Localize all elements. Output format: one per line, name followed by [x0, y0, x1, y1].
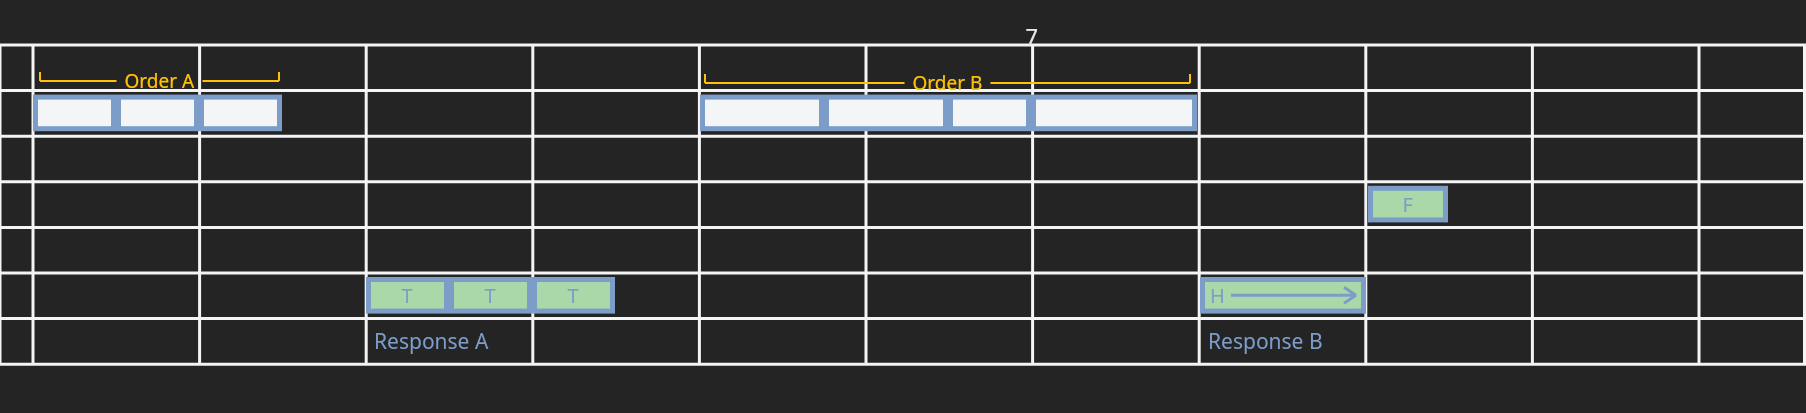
button[interactable]: Timing diagram: [0, 0, 1806, 413]
